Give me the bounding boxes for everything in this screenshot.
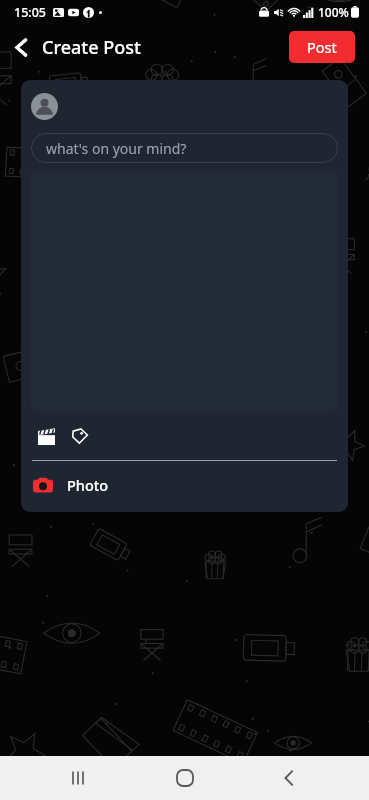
staticText: 15:05 bbox=[14, 4, 47, 21]
staticText: Create Post bbox=[42, 35, 141, 60]
button[interactable]: Photo bbox=[21, 473, 348, 497]
button[interactable]: Back bbox=[265, 756, 313, 800]
button[interactable]: what's on your mind? bbox=[31, 133, 338, 163]
staticText: Post bbox=[307, 37, 337, 57]
button[interactable]: Back bbox=[0, 26, 42, 68]
staticText: 100% bbox=[318, 4, 349, 20]
button[interactable]: Post bbox=[289, 31, 355, 63]
button[interactable]: Add video bbox=[33, 423, 59, 449]
button[interactable]: Recent apps bbox=[56, 756, 104, 800]
staticText: Photo bbox=[67, 475, 109, 495]
button[interactable]: Home bbox=[161, 756, 209, 800]
button[interactable]: Add tag bbox=[67, 423, 93, 449]
staticText: what's on your mind? bbox=[46, 139, 187, 158]
